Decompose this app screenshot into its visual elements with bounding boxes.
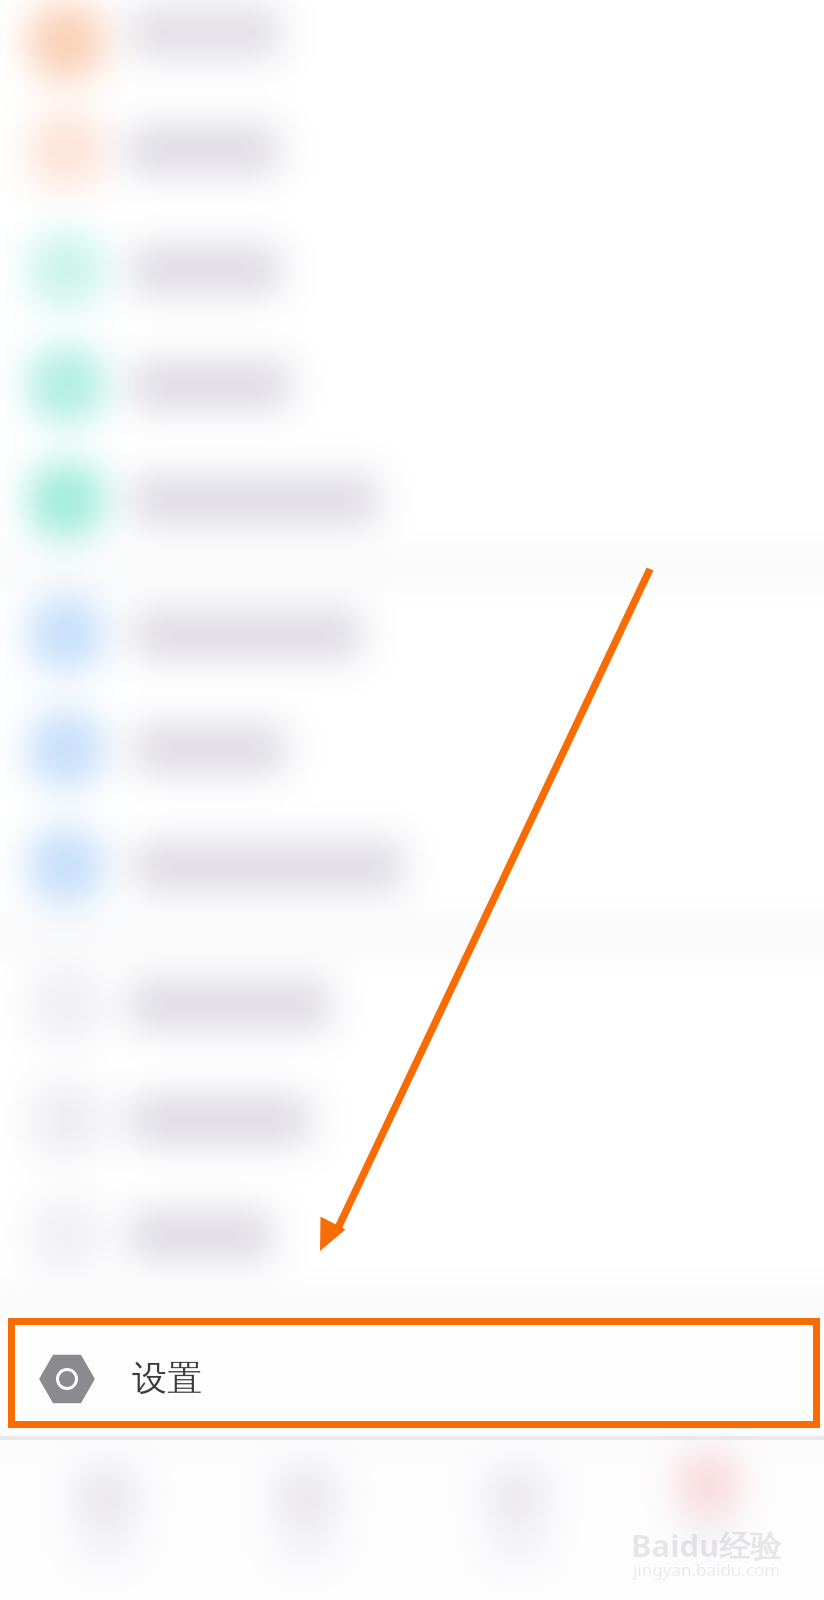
button[interactable]: Home xyxy=(6,1439,206,1600)
button[interactable] xyxy=(0,692,824,806)
other: Settings xyxy=(41,1353,93,1405)
button[interactable]: Settings xyxy=(15,1325,813,1421)
button[interactable] xyxy=(0,328,824,442)
button[interactable]: Discover xyxy=(206,1439,406,1600)
button[interactable]: Me xyxy=(608,1439,808,1600)
button[interactable] xyxy=(0,1063,824,1177)
button[interactable] xyxy=(0,577,824,691)
staticText: jingyan.baidu.com xyxy=(633,1558,781,1581)
button[interactable] xyxy=(0,93,824,207)
button[interactable]: Messages xyxy=(417,1439,617,1600)
staticText: Baidu经验 xyxy=(631,1524,782,1566)
button[interactable] xyxy=(0,948,824,1062)
staticText: 设置 xyxy=(132,1356,202,1400)
button[interactable] xyxy=(0,443,824,557)
button[interactable] xyxy=(0,213,824,327)
button[interactable] xyxy=(0,809,824,923)
button[interactable] xyxy=(0,1178,824,1292)
button[interactable] xyxy=(0,0,824,99)
